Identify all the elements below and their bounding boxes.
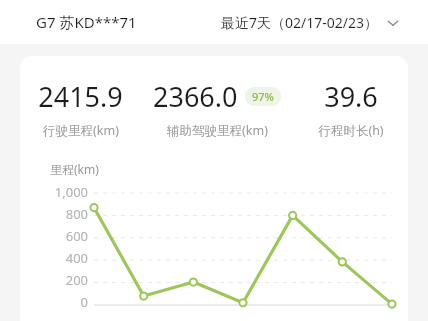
button[interactable]: 2415.9 <box>20 78 141 139</box>
staticText: 2415.9 <box>38 78 123 115</box>
button[interactable]: 39.6 <box>293 78 408 139</box>
staticText: 里程(km) <box>50 161 99 177</box>
staticText: G7 苏KD***71 <box>36 12 137 32</box>
other: Change date range <box>386 16 400 30</box>
button[interactable]: 2366.0 <box>141 78 293 139</box>
staticText: 0 <box>80 293 88 311</box>
staticText: 200 <box>65 271 88 289</box>
staticText: 600 <box>65 227 88 245</box>
staticText: 最近7天（02/17-02/23） <box>221 13 378 32</box>
staticText: 行程时长(h) <box>318 122 384 139</box>
staticText: 行驶里程(km) <box>43 122 119 139</box>
button[interactable]: 最近7天（02/17-02/23） <box>221 13 400 32</box>
staticText: 辅助驾驶里程(km) <box>167 122 268 139</box>
staticText: 1,000 <box>54 183 88 201</box>
staticText: 97% <box>252 89 274 104</box>
staticText: 400 <box>65 249 88 267</box>
staticText: 800 <box>65 205 88 223</box>
staticText: 39.6 <box>324 78 378 115</box>
staticText: 2366.0 <box>153 78 238 115</box>
